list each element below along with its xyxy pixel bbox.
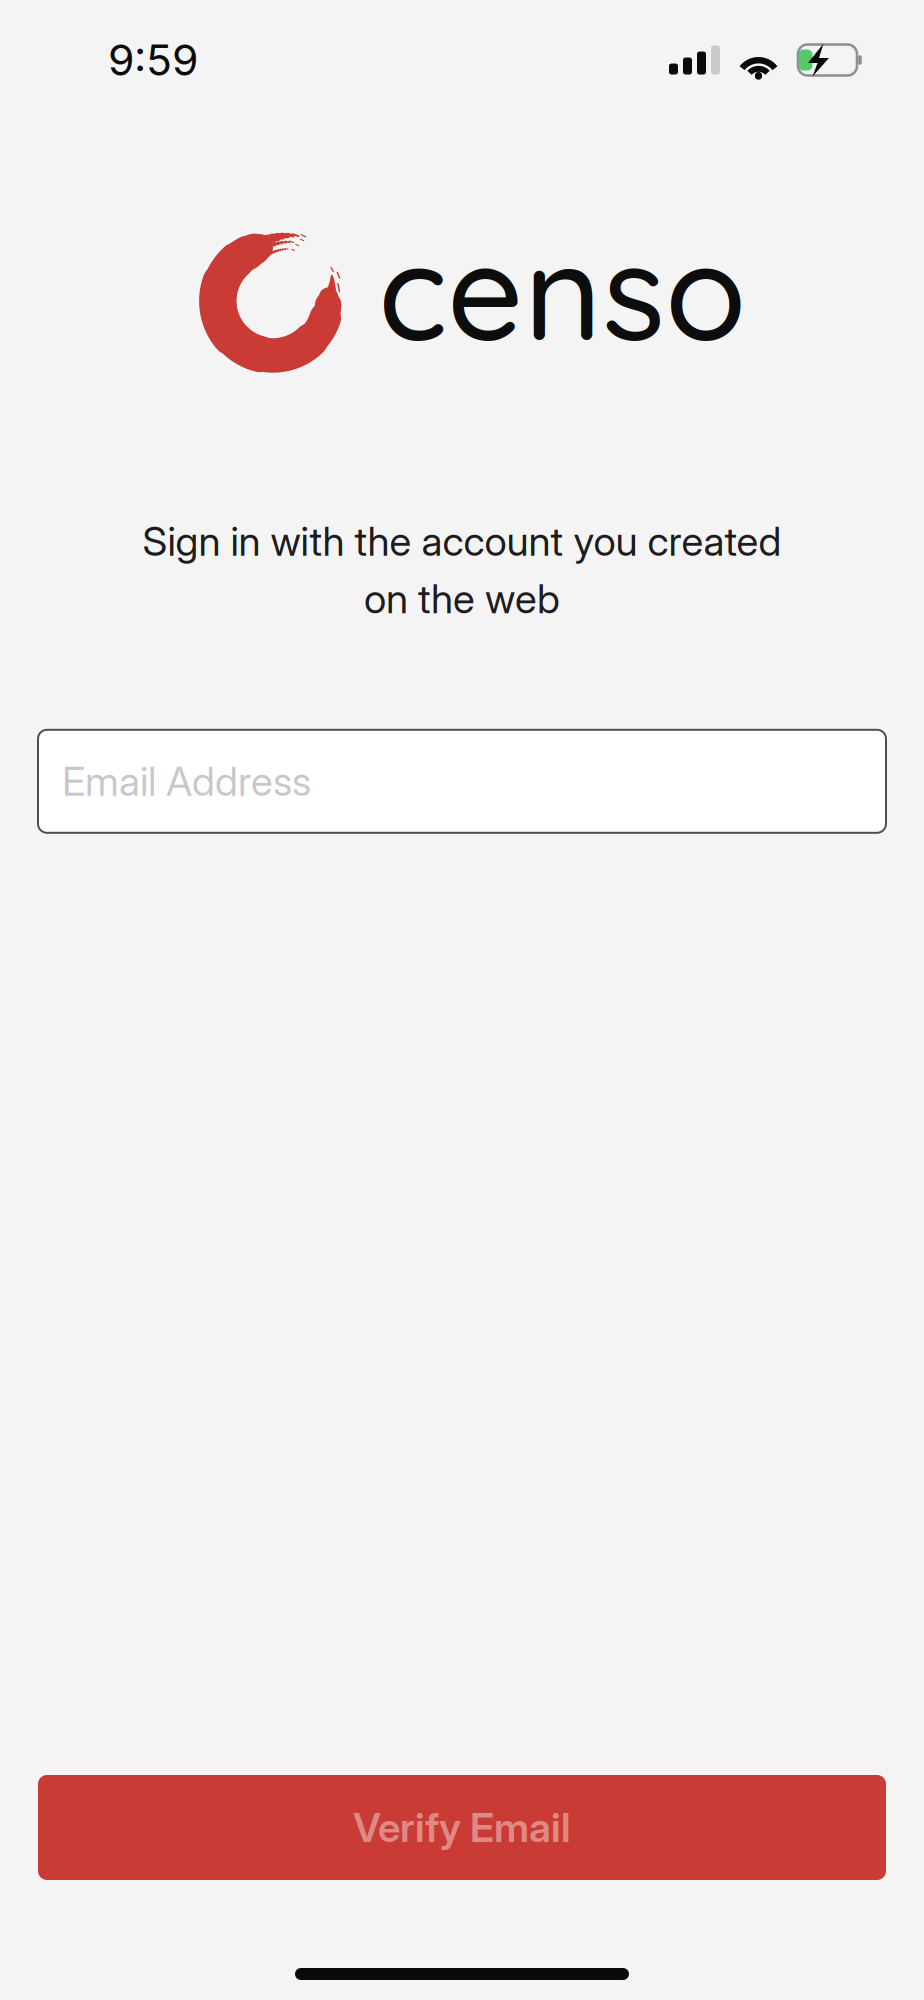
staticText: 9:59 [108,34,198,86]
staticText: Sign in with the account you created [142,517,781,565]
staticText: censo [378,207,747,373]
staticText: Email Address [62,757,311,805]
staticText: on the web [364,574,560,623]
staticText: Verify Email [353,1803,571,1852]
button[interactable]: Verify Email [38,1775,886,1880]
